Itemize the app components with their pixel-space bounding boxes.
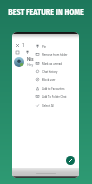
staticText: Pin <box>42 45 47 48</box>
button[interactable]: Block user <box>34 75 79 83</box>
button[interactable]: Remove from folder <box>34 50 79 58</box>
staticText: BEST FEATURE IN HOME <box>0 8 92 18</box>
button[interactable]: New chat <box>66 156 75 165</box>
button[interactable]: Chat history <box>34 67 79 75</box>
staticText: Mark as unread <box>42 62 62 65</box>
button[interactable]: Nisha <box>12 56 79 68</box>
button[interactable]: Pin <box>34 42 79 50</box>
button[interactable]: Add to Favourites <box>34 84 79 92</box>
staticText: Add To Folder Chat <box>42 95 67 98</box>
staticText: Add to Favourites <box>42 87 65 90</box>
staticText: Remove from folder <box>42 53 68 56</box>
button[interactable]: Add To Folder Chat <box>34 92 79 100</box>
staticText: Hey there <box>27 63 43 67</box>
staticText: Block user <box>42 78 56 81</box>
staticText: 1 <box>22 43 25 48</box>
staticText: Select All <box>42 104 54 107</box>
staticText: Nisha <box>27 57 39 62</box>
staticText: Chat history <box>42 70 58 73</box>
button[interactable]: Mark as unread <box>34 59 79 67</box>
button[interactable]: Pin chat <box>25 50 29 54</box>
button[interactable]: Close selection <box>14 42 20 48</box>
button[interactable]: Select All <box>34 101 79 109</box>
button[interactable]: Select <box>15 50 19 54</box>
